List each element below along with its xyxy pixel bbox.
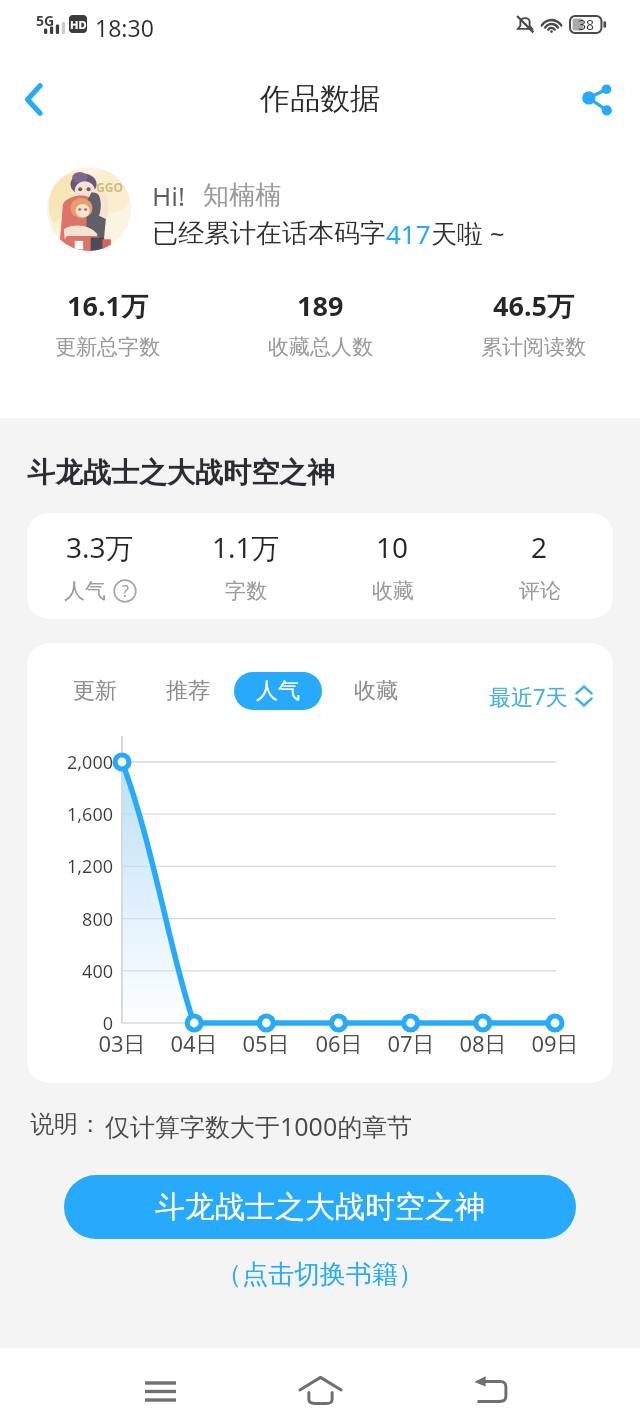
- staticText: 400: [27, 959, 113, 984]
- staticText: 已经累计在话本码字: [152, 217, 386, 250]
- staticText: 收藏总人数: [268, 334, 373, 360]
- staticText: 天啦 ~: [431, 215, 505, 251]
- button[interactable]: Recent apps: [122, 1350, 198, 1426]
- button[interactable]: 最近7天: [489, 681, 593, 711]
- staticText: 5G: [36, 11, 55, 30]
- staticText: 人气: [64, 578, 106, 604]
- staticText: 斗龙战士之大战时空之神: [155, 1188, 485, 1226]
- staticText: 知楠楠: [203, 179, 281, 212]
- button[interactable]: Share: [574, 66, 640, 132]
- staticText: 189: [297, 287, 344, 324]
- button[interactable]: 推荐: [163, 672, 213, 710]
- staticText: 更新总字数: [55, 334, 160, 360]
- staticText: 更新: [73, 677, 117, 705]
- button[interactable]: 人气: [234, 672, 322, 710]
- staticText: 07日: [371, 1028, 451, 1058]
- button[interactable]: Home: [282, 1350, 358, 1426]
- staticText: 10: [376, 528, 409, 566]
- staticText: 1,200: [27, 854, 113, 879]
- staticText: 评论: [519, 578, 561, 604]
- staticText: 03日: [82, 1028, 162, 1058]
- staticText: 2,000: [27, 750, 113, 775]
- staticText: 1.1万: [212, 528, 280, 566]
- staticText: 800: [27, 907, 113, 932]
- staticText: 04日: [154, 1028, 234, 1058]
- staticText: 16.1万: [67, 287, 148, 324]
- button[interactable]: Back: [452, 1350, 528, 1426]
- staticText: 417: [386, 216, 431, 251]
- staticText: 斗龙战士之大战时空之神: [27, 455, 335, 490]
- staticText: 0: [27, 1011, 113, 1036]
- staticText: 46.5万: [493, 287, 574, 324]
- staticText: 作品数据: [260, 80, 380, 118]
- staticText: 人气: [256, 677, 300, 705]
- staticText: 仅计算字数大于1000的章节: [105, 1109, 413, 1143]
- staticText: ?: [122, 580, 129, 602]
- staticText: 最近7天: [489, 681, 568, 711]
- staticText: 18:30: [95, 12, 154, 43]
- button[interactable]: 斗龙战士之大战时空之神: [64, 1175, 576, 1239]
- staticText: 38: [578, 15, 595, 34]
- button[interactable]: 更新: [70, 672, 120, 710]
- staticText: （点击切换书籍）: [216, 1258, 424, 1291]
- staticText: Hi!: [152, 178, 185, 213]
- staticText: 3.3万: [66, 528, 134, 566]
- staticText: 推荐: [166, 677, 210, 705]
- staticText: GGO: [96, 179, 123, 195]
- staticText: 收藏: [354, 677, 398, 705]
- button[interactable]: Back: [0, 66, 66, 132]
- button[interactable]: 收藏: [351, 672, 401, 710]
- staticText: 05日: [226, 1028, 306, 1058]
- staticText: 字数: [225, 578, 267, 604]
- staticText: 收藏: [372, 578, 414, 604]
- staticText: 说明：: [30, 1109, 102, 1139]
- staticText: 06日: [299, 1028, 379, 1058]
- staticText: 2: [531, 528, 548, 566]
- staticText: 09日: [515, 1028, 595, 1058]
- button[interactable]: （点击切换书籍）: [204, 1254, 436, 1295]
- staticText: 1,600: [27, 802, 113, 827]
- staticText: 累计阅读数: [481, 334, 586, 360]
- staticText: HD: [70, 17, 87, 32]
- staticText: 08日: [443, 1028, 523, 1058]
